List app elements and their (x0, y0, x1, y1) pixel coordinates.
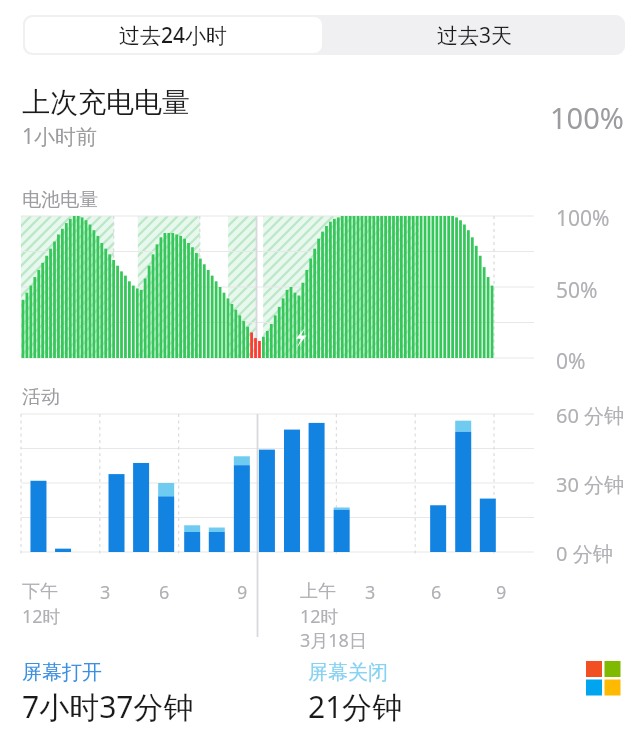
other: Logo (583, 658, 625, 700)
staticText: 过去3天 (437, 21, 513, 50)
staticText: 6 (159, 580, 170, 605)
staticText: 7小时37分钟 (22, 686, 194, 727)
staticText: 下午 (22, 580, 58, 603)
staticText: 屏幕关闭 (308, 660, 388, 685)
staticText: 电池电量 (22, 188, 98, 212)
staticText: 3月18日 (300, 628, 367, 653)
staticText: 上次充电电量 (22, 85, 190, 120)
staticText: 活动 (22, 385, 60, 409)
staticText: 1小时前 (22, 122, 98, 151)
button[interactable]: 过去3天 (324, 15, 625, 55)
button[interactable]: 过去24小时 (25, 17, 322, 53)
staticText: 3 (100, 580, 111, 605)
staticText: 60 分钟 (556, 402, 625, 429)
staticText: 100% (550, 98, 624, 137)
staticText: 上午 (300, 580, 336, 603)
staticText: 12时 (300, 604, 339, 629)
staticText: 50% (556, 276, 598, 305)
staticText: 0% (556, 347, 586, 376)
staticText: 3 (365, 580, 376, 605)
staticText: 9 (496, 580, 507, 605)
staticText: 30 分钟 (556, 471, 625, 498)
staticText: 9 (237, 580, 248, 605)
staticText: 21分钟 (308, 686, 403, 727)
staticText: 0 分钟 (556, 540, 613, 567)
staticText: 屏幕打开 (22, 660, 102, 685)
staticText: 100% (556, 204, 610, 233)
staticText: 12时 (22, 604, 61, 629)
staticText: 过去24小时 (119, 21, 228, 50)
staticText: 6 (431, 580, 442, 605)
